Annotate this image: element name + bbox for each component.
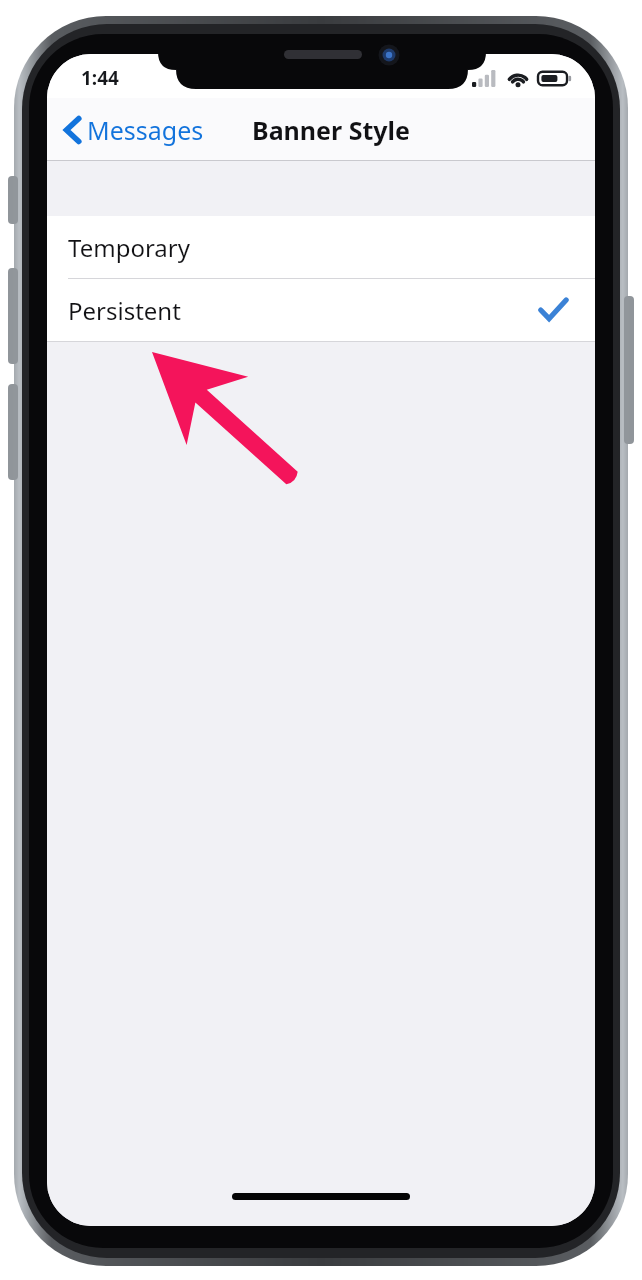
staticText: Persistent: [68, 294, 181, 327]
button[interactable]: Messages: [57, 107, 212, 153]
staticText: Messages: [87, 113, 204, 147]
button[interactable]: Temporary: [47, 216, 595, 278]
staticText: Banner Style: [252, 113, 410, 147]
staticText: 1:44: [81, 65, 119, 91]
other: Selected: [539, 298, 567, 322]
staticText: Temporary: [68, 231, 190, 264]
button[interactable]: Persistent: [47, 279, 595, 341]
